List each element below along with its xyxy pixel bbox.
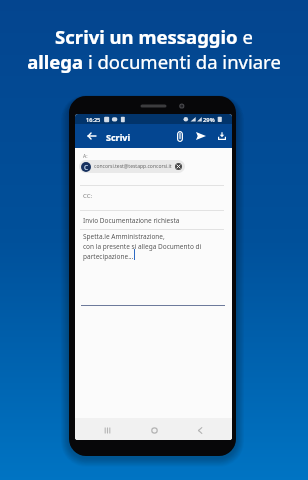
staticText: Spetta.le Amministrazione, con la presen… — [83, 232, 202, 261]
button[interactable]: Indietro — [185, 419, 215, 440]
staticText: A: — [83, 153, 88, 160]
staticText: allega i documenti da inviare — [27, 49, 281, 74]
button[interactable]: Allega — [169, 124, 191, 148]
staticText: Scrivi — [106, 131, 131, 143]
button[interactable]: Salva bozza — [211, 124, 232, 148]
staticText: 29% — [203, 116, 215, 124]
button[interactable]: Invia — [190, 124, 212, 148]
button[interactable]: Recenti — [92, 419, 122, 440]
staticText: CC: — [83, 192, 93, 200]
staticText: C — [84, 163, 89, 172]
staticText: concorsi.test@testapp.concorsi.it — [94, 163, 172, 170]
staticText: Scrivi un messaggio e — [55, 24, 253, 49]
button[interactable]: C — [79, 160, 185, 173]
staticText: Invio Documentazione richiesta — [83, 216, 180, 225]
staticText: 16:25 — [86, 116, 101, 124]
button[interactable]: Home — [139, 419, 169, 440]
button[interactable]: Indietro — [79, 124, 103, 148]
